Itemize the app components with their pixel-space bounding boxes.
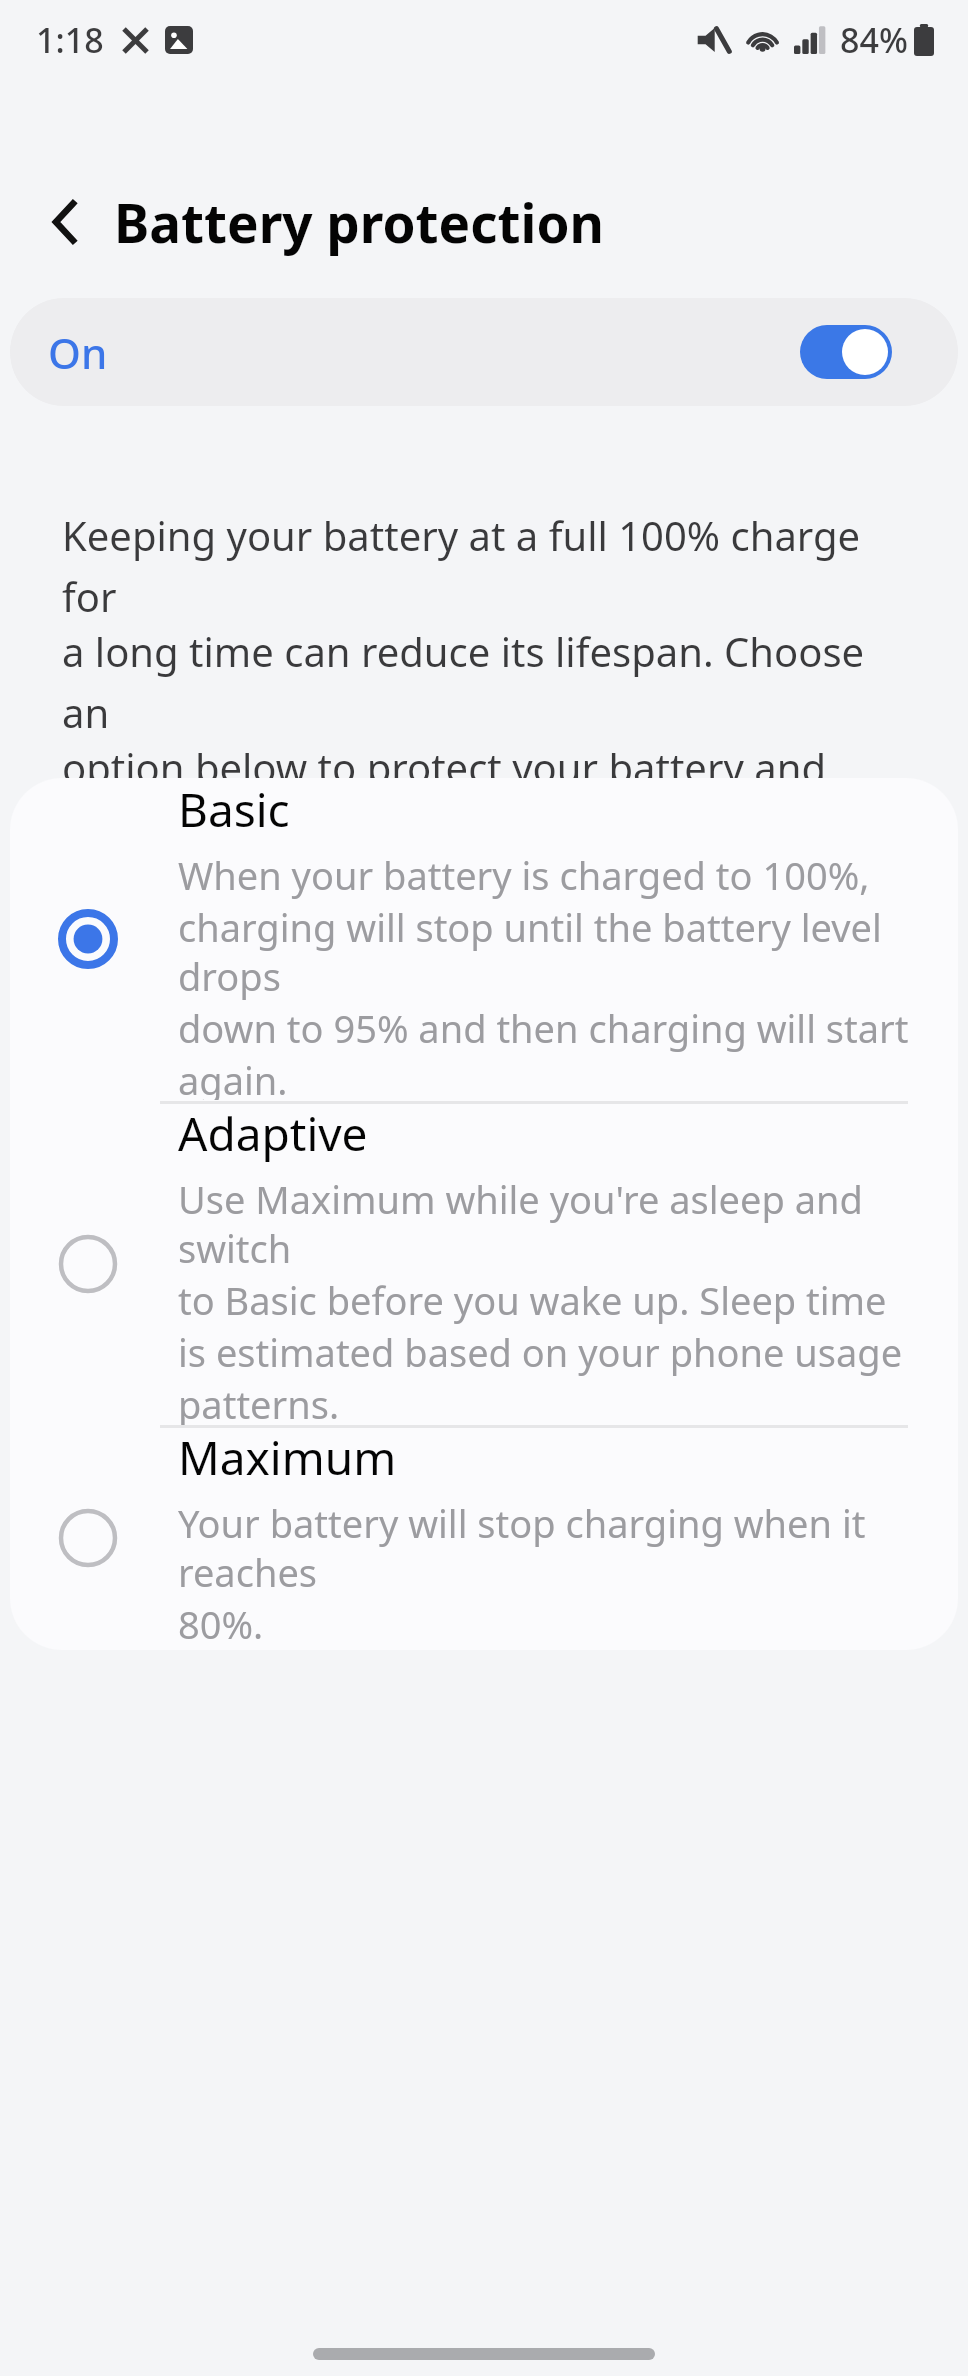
staticText: Your battery will stop charging when it … [178, 1497, 918, 1598]
staticText: option below to protect your battery and… [62, 740, 912, 856]
staticText: Maximum [178, 1426, 397, 1489]
staticText: When your battery is charged to 100%, [178, 849, 870, 901]
button[interactable]: Adaptive [10, 1102, 958, 1425]
button[interactable]: Basic [10, 778, 958, 1100]
staticText: Battery protection [114, 186, 605, 258]
staticText: last longer. [62, 856, 266, 910]
staticText: 84% [840, 17, 908, 63]
staticText: 1:18 [36, 17, 104, 63]
staticText: Keeping your battery at a full 100% char… [62, 508, 912, 624]
staticText: Basic [178, 778, 290, 841]
staticText: Adaptive [178, 1102, 368, 1165]
button[interactable]: Maximum [10, 1426, 958, 1650]
staticText: charging will stop until the battery lev… [178, 901, 918, 1002]
staticText: 80%. [178, 1598, 264, 1650]
staticText: to Basic before you wake up. Sleep time [178, 1274, 887, 1326]
button[interactable]: On [10, 298, 958, 406]
staticText: On [48, 324, 108, 381]
staticText: a long time can reduce its lifespan. Cho… [62, 624, 912, 740]
staticText: patterns. [178, 1378, 340, 1425]
button[interactable]: Back [30, 186, 102, 258]
staticText: again. [178, 1054, 288, 1100]
button[interactable]: Battery protection toggle, on [800, 325, 892, 379]
staticText: down to 95% and then charging will start [178, 1002, 909, 1054]
staticText: is estimated based on your phone usage [178, 1326, 903, 1378]
staticText: Use Maximum while you're asleep and swit… [178, 1173, 918, 1274]
